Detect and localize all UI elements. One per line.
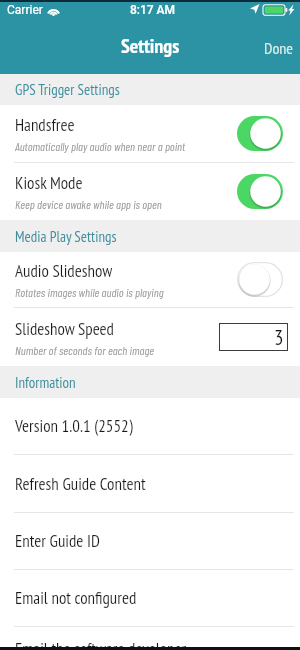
button[interactable]: Kiosk Mode	[0, 163, 300, 220]
staticText: Audio Slideshow	[15, 260, 113, 282]
button[interactable]: Off	[237, 262, 283, 297]
staticText: Rotates images while audio is playing	[15, 285, 164, 299]
button[interactable]: Refresh Guide Content	[0, 455, 300, 512]
staticText: Carrier	[7, 3, 43, 17]
staticText: 3	[274, 324, 284, 351]
button[interactable]: Version 1.0.1 (2552)	[0, 398, 300, 454]
staticText: Done	[264, 38, 293, 59]
staticText: Handsfree	[15, 114, 75, 136]
staticText: GPS Trigger Settings	[15, 80, 120, 99]
button[interactable]: Slideshow Speed	[0, 308, 300, 366]
button[interactable]: Email not configured	[0, 570, 300, 626]
staticText: Media Play Settings	[15, 227, 117, 246]
staticText: Refresh Guide Content	[15, 473, 146, 495]
button[interactable]: Audio Slideshow	[0, 252, 300, 307]
staticText: Version 1.0.1 (2552)	[15, 415, 133, 437]
staticText: Email the software developer	[15, 638, 187, 650]
button[interactable]: Enter Guide ID	[0, 513, 300, 569]
staticText: Enter Guide ID	[15, 530, 100, 552]
staticText: Information	[15, 373, 76, 392]
staticText: Kiosk Mode	[15, 172, 83, 194]
button[interactable]: On	[237, 174, 283, 209]
button[interactable]: On	[237, 116, 283, 151]
staticText: Email not configured	[15, 587, 137, 609]
staticText: Slideshow Speed	[15, 318, 114, 340]
staticText: Number of seconds for each image	[15, 343, 154, 357]
button[interactable]: Handsfree	[0, 105, 300, 162]
staticText: Automatically play audio when near a poi…	[15, 139, 186, 153]
staticText: Keep device awake while app is open	[15, 197, 162, 211]
staticText: 8:17 AM	[130, 3, 176, 17]
staticText: Settings	[121, 33, 180, 59]
button[interactable]: Done	[252, 37, 300, 58]
button[interactable]: 3	[219, 323, 288, 351]
